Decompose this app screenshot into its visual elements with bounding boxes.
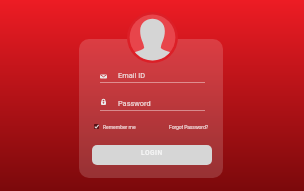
staticText: Remember me — [103, 124, 136, 130]
staticText: Email ID — [118, 71, 145, 80]
button[interactable]: Forgot Password? — [169, 121, 208, 132]
button[interactable]: LOGIN — [92, 145, 212, 165]
button[interactable]: Password — [100, 96, 205, 112]
button[interactable]: Email ID — [100, 70, 205, 84]
button[interactable]: Remember me — [94, 121, 136, 132]
staticText: LOGIN — [141, 149, 163, 157]
staticText: Forgot Password? — [169, 124, 208, 130]
staticText: Password — [118, 99, 151, 108]
